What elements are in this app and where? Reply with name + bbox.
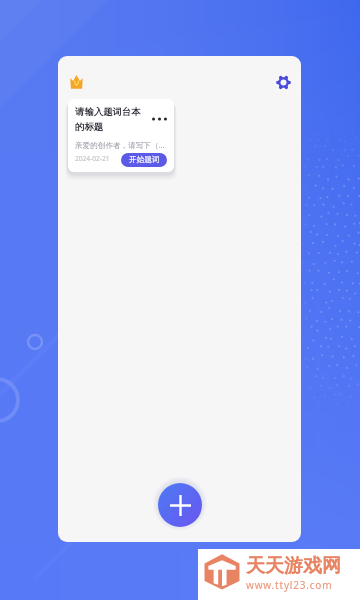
button[interactable]: 开始题词 xyxy=(121,153,167,167)
button[interactable]: Settings xyxy=(269,68,297,96)
staticText: www.ttyl23.com xyxy=(246,578,333,592)
button[interactable]: VIP membership xyxy=(62,67,90,95)
button[interactable]: Add xyxy=(158,483,202,527)
staticText: 开始题词 xyxy=(129,155,160,165)
button[interactable]: 请输入题词台本的标题 xyxy=(68,99,174,172)
staticText: 2024-02-21 xyxy=(75,154,110,163)
staticText: 亲爱的创作者，请写下（... xyxy=(75,140,165,150)
staticText: 天天游戏网 xyxy=(246,554,341,578)
button[interactable]: More options xyxy=(148,109,170,129)
staticText: 请输入题词台本的标题 xyxy=(75,106,143,133)
